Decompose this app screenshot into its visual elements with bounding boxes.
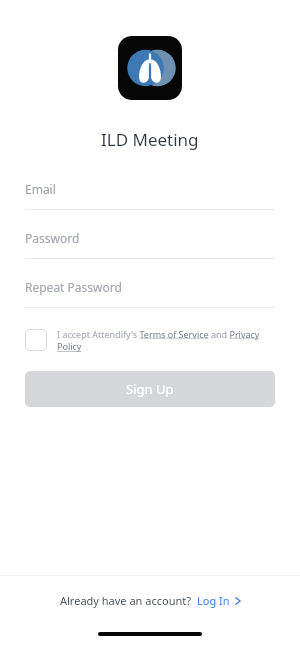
button[interactable]: Sign Up (25, 371, 275, 407)
button[interactable]: Repeat Password (25, 276, 275, 308)
staticText: Password (25, 230, 80, 246)
other: ILD Meeting app icon (118, 36, 182, 100)
staticText: Repeat Password (25, 279, 122, 295)
button[interactable]: Already have an account? (60, 593, 241, 608)
staticText: Log In (197, 593, 230, 608)
staticText: Email (25, 181, 56, 197)
other: Accept terms checkbox (25, 329, 47, 351)
staticText: I accept Attendify's Terms of Service an… (57, 328, 275, 353)
button[interactable]: Password (25, 227, 275, 259)
staticText: ILD Meeting (101, 128, 199, 151)
staticText: Already have an account? (60, 593, 191, 608)
button[interactable]: Email (25, 178, 275, 210)
staticText: Sign Up (126, 380, 174, 398)
button[interactable]: Accept terms checkbox (25, 328, 275, 353)
